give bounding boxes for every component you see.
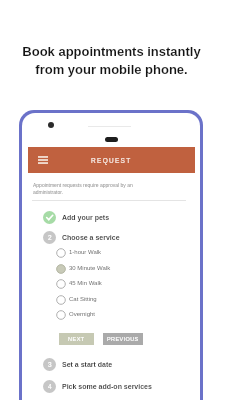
button[interactable]: Open navigation menu <box>33 147 53 173</box>
staticText: Pick some add-on services <box>62 383 152 391</box>
staticText: REQUEST <box>91 157 132 164</box>
button[interactable]: 45 Min Walk <box>52 276 172 291</box>
staticText: PREVIOUS <box>107 336 139 342</box>
staticText: Set a start date <box>62 361 113 369</box>
staticText: 2 <box>48 234 52 241</box>
staticText: 1-hour Walk <box>69 249 102 256</box>
button[interactable]: 1-hour Walk <box>52 245 172 260</box>
button[interactable]: NEXT <box>59 333 94 345</box>
button[interactable]: Add your pets <box>37 208 182 227</box>
staticText: Book appointments instantly from your mo… <box>22 44 201 76</box>
staticText: 4 <box>48 383 52 390</box>
button[interactable]: Overnight <box>52 307 172 322</box>
button[interactable]: 30 Minute Walk <box>52 261 172 276</box>
staticText: Choose a service <box>62 234 120 242</box>
button[interactable]: Cat Sitting <box>52 292 172 307</box>
staticText: Add your pets <box>62 214 110 222</box>
button[interactable]: 4 <box>37 377 182 396</box>
staticText: 30 Minute Walk <box>69 265 111 272</box>
staticText: Overnight <box>69 311 96 318</box>
staticText: Appointment requests require approval by… <box>33 182 137 195</box>
staticText: 3 <box>48 361 52 368</box>
staticText: 45 Min Walk <box>69 280 102 287</box>
button[interactable]: 2 <box>37 228 182 247</box>
staticText: NEXT <box>68 336 85 342</box>
button[interactable]: 3 <box>37 355 182 374</box>
staticText: Cat Sitting <box>69 296 97 303</box>
button[interactable]: PREVIOUS <box>103 333 143 345</box>
